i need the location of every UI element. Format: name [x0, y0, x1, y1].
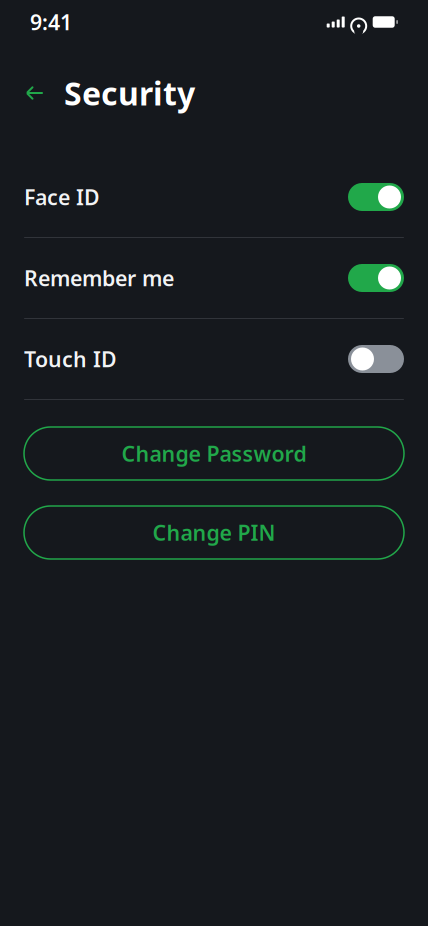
staticText: Change Password [121, 439, 306, 468]
staticText: Security [64, 72, 195, 114]
staticText: Change PIN [152, 518, 275, 547]
button[interactable]: Change Password [24, 427, 404, 480]
button[interactable]: Back [19, 71, 51, 115]
button[interactable]: Touch ID [0, 319, 428, 399]
button[interactable]: Change PIN [24, 506, 404, 559]
staticText: Face ID [24, 183, 100, 211]
button[interactable]: Remember me [0, 238, 428, 318]
staticText: Touch ID [24, 345, 117, 373]
button[interactable]: Face ID [0, 157, 428, 237]
staticText: Remember me [24, 264, 174, 292]
staticText: 9:41 [30, 8, 72, 36]
